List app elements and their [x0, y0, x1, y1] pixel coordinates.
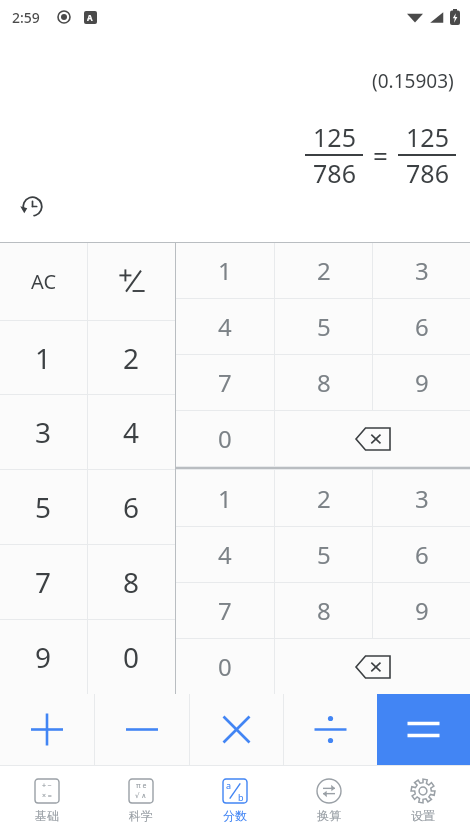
staticText: 1: [218, 254, 232, 287]
staticText: 7: [35, 563, 52, 601]
button[interactable]: 1: [176, 243, 274, 298]
button[interactable]: 1: [176, 470, 274, 526]
staticText: 5: [317, 310, 331, 343]
button[interactable]: 2: [88, 321, 175, 394]
staticText: × =: [42, 791, 52, 801]
button[interactable]: 9: [373, 583, 470, 638]
button[interactable]: 6: [373, 299, 470, 354]
button[interactable]: + −: [0, 766, 94, 835]
button[interactable]: 3: [373, 470, 470, 526]
staticText: 1: [35, 339, 52, 377]
button[interactable]: 9: [373, 355, 470, 410]
staticText: 分数: [223, 808, 247, 823]
button[interactable]: 7: [176, 355, 274, 410]
button[interactable]: 0: [88, 620, 175, 694]
staticText: 125: [313, 120, 356, 154]
button[interactable]: 7: [176, 583, 274, 638]
staticText: 8: [317, 594, 331, 627]
button[interactable]: Backspace: [275, 639, 470, 694]
staticText: 6: [415, 310, 429, 343]
button[interactable]: 2: [275, 243, 372, 298]
button[interactable]: 4: [176, 299, 274, 354]
staticText: AC: [31, 268, 57, 295]
button[interactable]: 设置: [376, 766, 470, 835]
staticText: π e: [136, 781, 147, 791]
staticText: 2: [123, 339, 140, 377]
button[interactable]: Backspace: [275, 411, 470, 466]
button[interactable]: 8: [275, 355, 372, 410]
staticText: √ ∧: [135, 791, 147, 801]
staticText: 6: [123, 488, 140, 526]
staticText: (0.15903): [372, 68, 454, 94]
staticText: 2: [317, 254, 331, 287]
staticText: 3: [415, 482, 429, 515]
button[interactable]: 2: [275, 470, 372, 526]
staticText: 4: [123, 413, 140, 451]
button[interactable]: Minus: [95, 694, 189, 765]
button[interactable]: 3: [373, 243, 470, 298]
staticText: 4: [218, 538, 232, 571]
staticText: 5: [35, 488, 52, 526]
staticText: a: [226, 779, 232, 791]
button[interactable]: 4: [88, 395, 175, 469]
staticText: 1: [218, 482, 232, 515]
button[interactable]: 5: [275, 299, 372, 354]
button[interactable]: 0: [176, 411, 274, 466]
button[interactable]: 4: [176, 527, 274, 582]
staticText: 换算: [317, 808, 341, 823]
button[interactable]: Multiply: [190, 694, 283, 765]
staticText: 3: [35, 413, 52, 451]
staticText: 5: [317, 538, 331, 571]
button[interactable]: 6: [373, 527, 470, 582]
button[interactable]: AC: [0, 243, 87, 320]
staticText: 7: [218, 366, 232, 399]
button[interactable]: History: [18, 192, 46, 220]
staticText: 4: [218, 310, 232, 343]
staticText: 786: [313, 156, 356, 190]
staticText: 科学: [129, 808, 153, 823]
staticText: 8: [317, 366, 331, 399]
button[interactable]: 5: [275, 527, 372, 582]
staticText: 2:59: [12, 8, 40, 27]
button[interactable]: 5: [0, 470, 87, 544]
button[interactable]: 8: [88, 545, 175, 619]
staticText: 9: [415, 594, 429, 627]
staticText: 786: [406, 156, 449, 190]
staticText: 6: [415, 538, 429, 571]
staticText: + −: [42, 781, 52, 791]
staticText: 125: [406, 120, 449, 154]
button[interactable]: a: [188, 766, 282, 835]
staticText: 设置: [411, 808, 435, 823]
staticText: 9: [35, 638, 52, 676]
button[interactable]: 1: [0, 321, 87, 394]
button[interactable]: π e: [94, 766, 188, 835]
staticText: 2: [317, 482, 331, 515]
staticText: 8: [123, 563, 140, 601]
staticText: 7: [218, 594, 232, 627]
button[interactable]: 3: [0, 395, 87, 469]
staticText: =: [373, 138, 388, 173]
staticText: 0: [218, 650, 232, 683]
button[interactable]: 换算: [282, 766, 376, 835]
button[interactable]: Plus minus: [88, 243, 175, 320]
staticText: A: [87, 12, 93, 23]
button[interactable]: 7: [0, 545, 87, 619]
button[interactable]: Plus: [0, 694, 94, 765]
staticText: 0: [123, 638, 140, 676]
staticText: b: [238, 791, 244, 803]
button[interactable]: Divide: [284, 694, 377, 765]
button[interactable]: 8: [275, 583, 372, 638]
button[interactable]: Equals: [377, 694, 470, 765]
staticText: 9: [415, 366, 429, 399]
button[interactable]: 9: [0, 620, 87, 694]
button[interactable]: 6: [88, 470, 175, 544]
staticText: 基础: [35, 808, 59, 823]
staticText: 3: [415, 254, 429, 287]
staticText: 0: [218, 422, 232, 455]
button[interactable]: 0: [176, 639, 274, 694]
